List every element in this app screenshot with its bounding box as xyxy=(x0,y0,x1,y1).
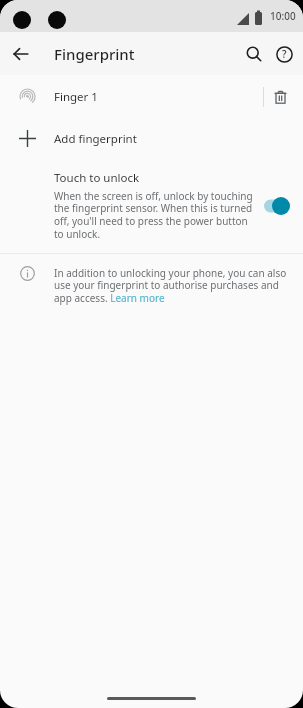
button[interactable]: Finger 1 xyxy=(0,75,303,118)
staticText: In addition to unlocking your phone, you… xyxy=(54,266,291,305)
button[interactable]: Add fingerprint xyxy=(0,118,303,159)
staticText: 10:00 xyxy=(270,9,296,23)
staticText: Fingerprint xyxy=(54,44,135,64)
button[interactable]: Help xyxy=(269,39,299,69)
button[interactable]: Touch to unlock xyxy=(0,159,303,253)
staticText: When the screen is off, unlock by touchi… xyxy=(54,189,256,241)
staticText: ? xyxy=(282,47,287,61)
button[interactable]: Back xyxy=(7,40,35,68)
other: Touch to unlock toggle xyxy=(264,197,290,215)
staticText: Touch to unlock xyxy=(54,170,140,186)
staticText: Add fingerprint xyxy=(54,131,137,147)
button[interactable]: Delete fingerprint xyxy=(265,82,295,112)
button[interactable]: Search xyxy=(239,39,269,69)
staticText: Finger 1 xyxy=(54,89,98,105)
